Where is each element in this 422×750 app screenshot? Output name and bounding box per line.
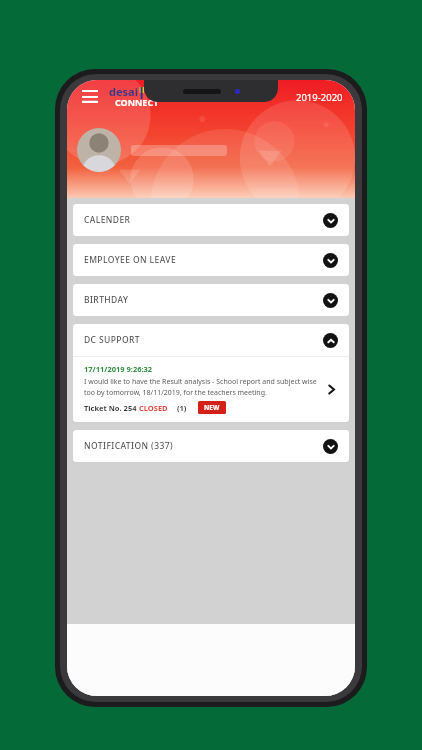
button[interactable]: CALENDER: [73, 204, 349, 236]
staticText: (1): [177, 403, 187, 413]
button[interactable]: NOTIFICATION (337): [73, 430, 349, 462]
staticText: desai: [109, 84, 138, 99]
button[interactable]: 17/11/2019 9:26:32: [73, 357, 349, 422]
staticText: NEW: [204, 403, 220, 412]
staticText: NOTIFICATION (337): [84, 440, 174, 452]
button[interactable]: Open navigation menu: [79, 86, 101, 108]
button[interactable]: BIRTHDAY: [73, 284, 349, 316]
staticText: I would like to have the Result analysis…: [84, 377, 321, 397]
staticText: CONNECT: [115, 96, 159, 107]
button[interactable]: DC SUPPORT: [73, 324, 349, 356]
button[interactable]: EMPLOYEE ON LEAVE: [73, 244, 349, 276]
staticText: CLOSED: [139, 403, 168, 413]
staticText: Ticket No. 254: [84, 403, 139, 413]
staticText: DC SUPPORT: [84, 334, 140, 346]
staticText: BIRTHDAY: [84, 294, 129, 306]
staticText: EMPLOYEE ON LEAVE: [84, 254, 177, 266]
other: Open ticket details: [321, 379, 341, 399]
staticText: CALENDER: [84, 214, 131, 226]
staticText: 17/11/2019 9:26:32: [84, 364, 153, 374]
staticText: 2019-2020: [296, 91, 343, 104]
